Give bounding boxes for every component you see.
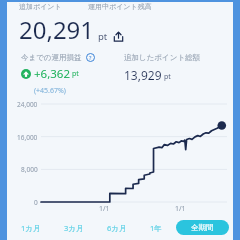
staticText: 3カ月 [64, 223, 84, 233]
staticText: 8,000 [21, 165, 38, 174]
staticText: 今までの運用損益 [21, 53, 82, 62]
staticText: 20,291 [19, 13, 95, 46]
staticText: 1年 [150, 223, 162, 233]
staticText: 追加ポイント [19, 2, 62, 10]
staticText: 13,929 [124, 67, 162, 83]
staticText: 運用中ポイント残高 [88, 2, 152, 10]
button[interactable]: 3カ月 [52, 217, 95, 238]
staticText: pt [72, 69, 79, 79]
staticText: (+45.67%) [34, 86, 66, 96]
staticText: 16,000 [17, 133, 38, 142]
button[interactable]: Help [86, 53, 95, 62]
staticText: ? [89, 54, 92, 61]
staticText: 1/1 [99, 204, 110, 214]
button[interactable]: Share [113, 31, 124, 42]
staticText: 1/1 [175, 204, 186, 214]
button[interactable]: 全期間 [176, 220, 229, 235]
staticText: +6,362 [34, 66, 70, 82]
staticText: pt [98, 30, 108, 43]
button[interactable]: 1年 [138, 217, 174, 238]
button[interactable]: 1カ月 [10, 217, 52, 238]
staticText: 24,000 [17, 100, 38, 109]
staticText: 0 [34, 198, 38, 207]
staticText: 追加したポイント総額 [124, 53, 201, 62]
staticText: 6カ月 [107, 223, 127, 233]
button[interactable]: 6カ月 [95, 217, 138, 238]
staticText: 1カ月 [21, 223, 41, 233]
staticText: 全期間 [191, 223, 214, 232]
staticText: pt [164, 72, 171, 82]
